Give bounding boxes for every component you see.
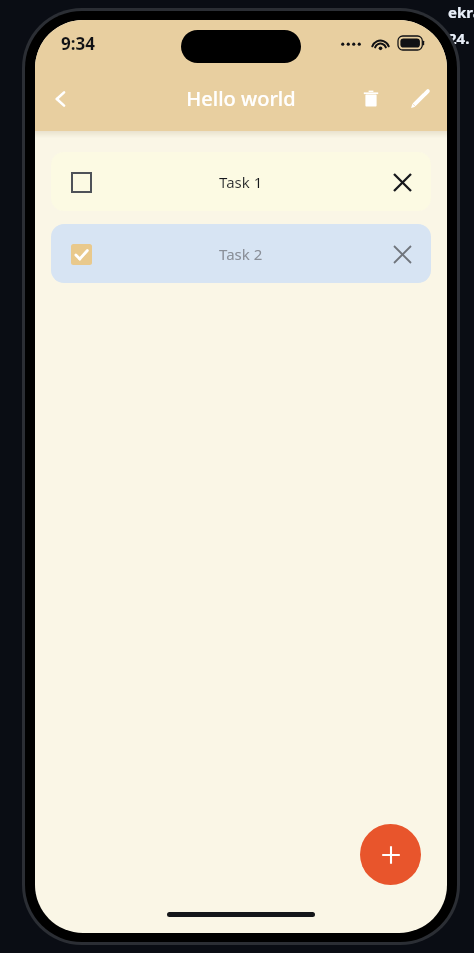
button[interactable]: Checked	[51, 224, 431, 283]
staticText: Hello world	[186, 85, 296, 112]
staticText: 24.	[448, 28, 470, 48]
staticText: ekranu	[448, 2, 474, 22]
button[interactable]: Unchecked	[64, 165, 98, 199]
staticText: Task 1	[219, 172, 263, 192]
button[interactable]: Delete	[349, 77, 393, 121]
button[interactable]: Unchecked	[51, 152, 431, 211]
button[interactable]: Remove Task 1	[384, 164, 420, 200]
button[interactable]: Remove Task 2	[384, 236, 420, 272]
staticText: Task 2	[219, 244, 263, 264]
staticText: 9:34	[61, 32, 95, 55]
button[interactable]: Edit	[397, 77, 441, 121]
button[interactable]: Checked	[64, 237, 98, 271]
button[interactable]: Add task	[360, 824, 421, 885]
button[interactable]: Back	[39, 77, 83, 121]
